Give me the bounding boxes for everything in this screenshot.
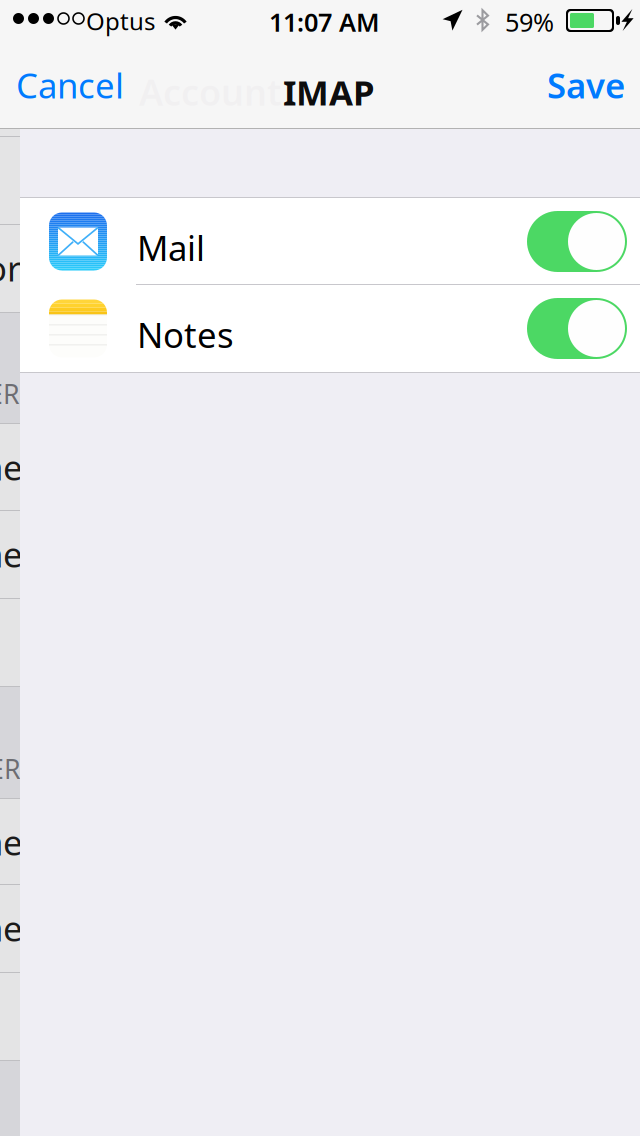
staticText: 59% [505, 5, 554, 39]
button[interactable]: Notes [20, 285, 640, 372]
staticText: User Name [0, 531, 23, 577]
staticText: Cancel [16, 62, 124, 108]
staticText: 11:07 AM [269, 5, 380, 39]
staticText: Mail [137, 224, 205, 270]
staticText: Optus [86, 5, 155, 37]
staticText: OUTGOING MAIL SERVER [0, 751, 21, 786]
staticText: Save [547, 62, 625, 108]
button[interactable]: Cancel [0, 42, 140, 128]
staticText: INCOMING MAIL SERVER [0, 376, 20, 411]
staticText: Host Name [0, 819, 23, 865]
staticText: Host Name [0, 444, 23, 490]
button[interactable]: Save [526, 42, 640, 128]
staticText: Notes [137, 311, 234, 357]
button[interactable]: Mail [20, 198, 640, 285]
staticText: Mail Director [0, 245, 21, 291]
staticText: IMAP [283, 69, 375, 115]
staticText: User Name [0, 905, 23, 951]
